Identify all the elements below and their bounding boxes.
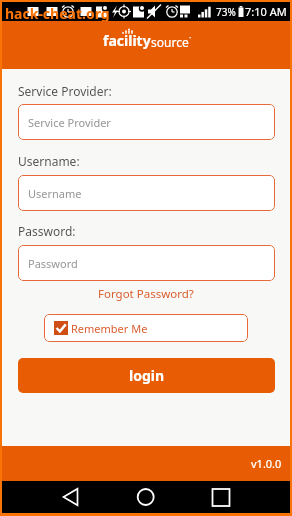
button[interactable]: Remember Me [44, 314, 248, 342]
button[interactable]: Home [117, 481, 177, 513]
staticText: Username [28, 186, 82, 201]
staticText: Username: [18, 153, 80, 169]
staticText: Service Provider: [18, 83, 112, 99]
staticText: · [189, 31, 192, 43]
staticText: Password [28, 256, 78, 271]
staticText: Service Provider [28, 115, 111, 130]
button[interactable]: Service Provider [18, 104, 275, 140]
staticText: Password: [18, 223, 76, 239]
staticText: source [151, 34, 189, 50]
staticText: facility [103, 31, 151, 50]
staticText: 73% [216, 5, 236, 19]
button[interactable]: Recent apps [192, 481, 252, 513]
button[interactable]: Forgot Password? [98, 286, 194, 302]
staticText: v1.0.0 [251, 456, 282, 471]
button[interactable]: Username [18, 175, 275, 211]
button[interactable]: Back [42, 481, 102, 513]
button[interactable]: Password [18, 245, 275, 281]
staticText: 7:10 AM [245, 4, 287, 19]
staticText: Remember Me [71, 321, 148, 336]
button[interactable]: login [18, 358, 275, 393]
staticText: login [129, 366, 165, 385]
staticText: hack-cheat.org [5, 4, 110, 23]
